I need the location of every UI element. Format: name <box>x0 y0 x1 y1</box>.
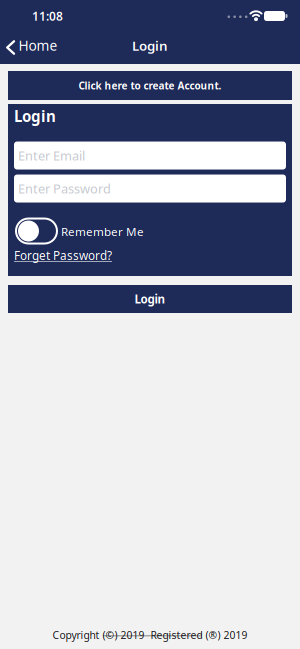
staticText: Login <box>14 106 56 126</box>
staticText: 11:08 <box>32 8 63 24</box>
staticText: Enter Password <box>18 180 111 197</box>
staticText: Forget Password? <box>14 247 112 263</box>
staticText: Remember Me <box>61 224 144 239</box>
staticText: Login <box>134 291 165 307</box>
staticText: Enter Email <box>18 147 85 164</box>
staticText: Copyright (©) 2019 Registered (®) 2019 <box>52 628 247 642</box>
staticText: Login <box>132 36 168 55</box>
staticText: Home <box>18 36 57 55</box>
staticText: Click here to create Account. <box>78 79 221 92</box>
